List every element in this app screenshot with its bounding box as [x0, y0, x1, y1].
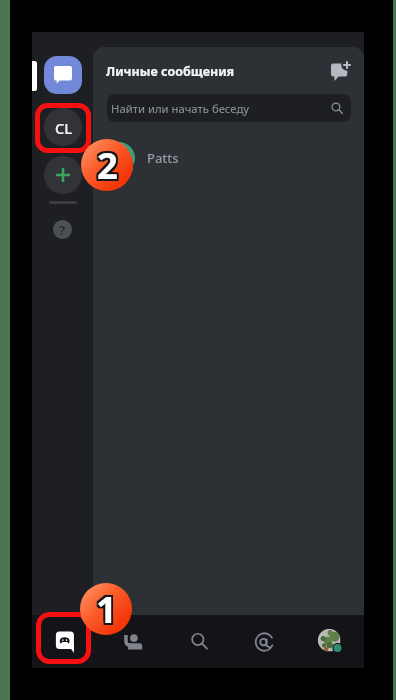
staticText: 1	[94, 584, 115, 634]
staticText: 1	[94, 586, 115, 635]
staticText: ?	[59, 221, 66, 239]
staticText: 1	[98, 584, 119, 634]
button[interactable]: Search	[166, 615, 232, 668]
staticText: 2	[97, 142, 118, 191]
button[interactable]: Profile	[298, 615, 364, 668]
staticText: Найти или начать беседу	[111, 101, 250, 116]
button[interactable]: Patts	[93, 137, 364, 179]
staticText: 2	[99, 140, 120, 190]
button[interactable]: Messages	[32, 615, 99, 668]
staticText: 2	[99, 139, 120, 188]
staticText: 2	[97, 140, 118, 190]
staticText: 2	[95, 140, 116, 190]
staticText: 1	[96, 584, 117, 634]
staticText: 2	[99, 142, 120, 191]
button[interactable]: Найти или начать беседу	[107, 94, 351, 122]
staticText: CL	[55, 118, 72, 138]
staticText: 2	[95, 142, 116, 191]
staticText: 1	[98, 583, 119, 632]
button[interactable]: Mentions	[232, 615, 298, 668]
button[interactable]: Add a server	[44, 156, 82, 194]
button[interactable]: New direct message	[326, 57, 354, 85]
staticText: 1	[94, 583, 115, 632]
staticText: 1	[96, 583, 117, 632]
button[interactable]: Direct messages	[44, 56, 82, 94]
staticText: 1	[98, 586, 119, 635]
staticText: Личные сообщения	[106, 63, 235, 80]
button[interactable]: Help	[53, 220, 72, 239]
button[interactable]: Friends	[99, 615, 166, 668]
staticText: Patts	[147, 149, 179, 167]
staticText: 2	[97, 139, 118, 188]
staticText: 2	[95, 139, 116, 188]
button[interactable]: CL	[44, 108, 82, 146]
staticText: 1	[96, 586, 117, 635]
